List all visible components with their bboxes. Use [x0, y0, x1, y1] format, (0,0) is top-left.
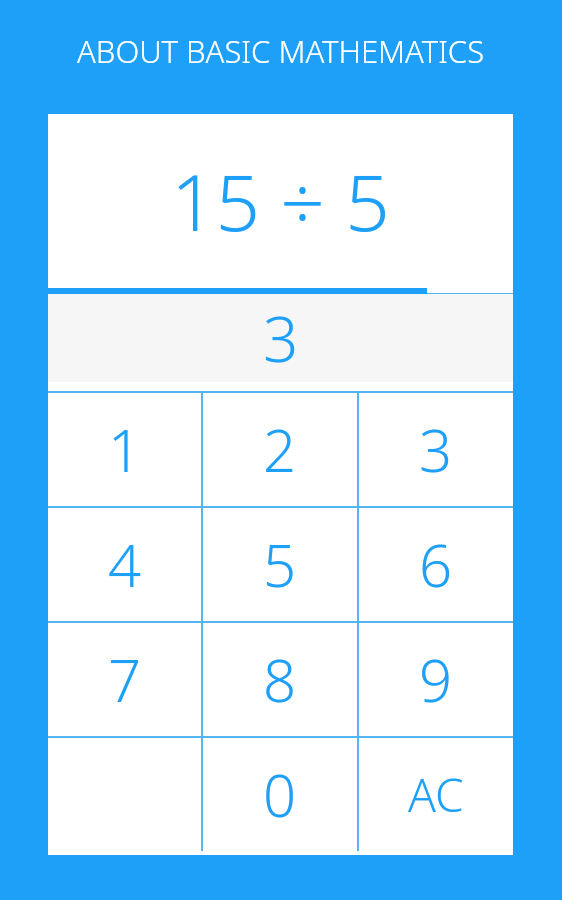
staticText: 4 — [108, 525, 142, 604]
staticText: 6 — [419, 525, 453, 604]
staticText: 8 — [263, 640, 297, 719]
button[interactable]: AC — [359, 738, 513, 851]
staticText: AC — [408, 763, 464, 826]
button[interactable]: 3 — [48, 294, 513, 382]
button[interactable]: 4 — [48, 508, 201, 621]
button[interactable]: 5 — [203, 508, 357, 621]
button[interactable]: 6 — [359, 508, 513, 621]
button[interactable]: 1 — [48, 393, 201, 506]
staticText: 3 — [419, 410, 453, 489]
staticText: ABOUT BASIC MATHEMATICS — [77, 30, 485, 72]
button[interactable]: 7 — [48, 623, 201, 736]
staticText: 2 — [263, 410, 297, 489]
button[interactable]: 8 — [203, 623, 357, 736]
staticText: 5 — [263, 525, 297, 604]
staticText: 9 — [419, 640, 453, 719]
button[interactable]: 3 — [359, 393, 513, 506]
button[interactable]: 9 — [359, 623, 513, 736]
staticText: 15 ÷ 5 — [171, 148, 390, 254]
staticText: 3 — [263, 296, 299, 380]
button[interactable]: 2 — [203, 393, 357, 506]
staticText: 1 — [108, 410, 142, 489]
button[interactable]: 0 — [203, 738, 357, 851]
staticText: 0 — [263, 755, 297, 834]
staticText: 7 — [108, 640, 142, 719]
